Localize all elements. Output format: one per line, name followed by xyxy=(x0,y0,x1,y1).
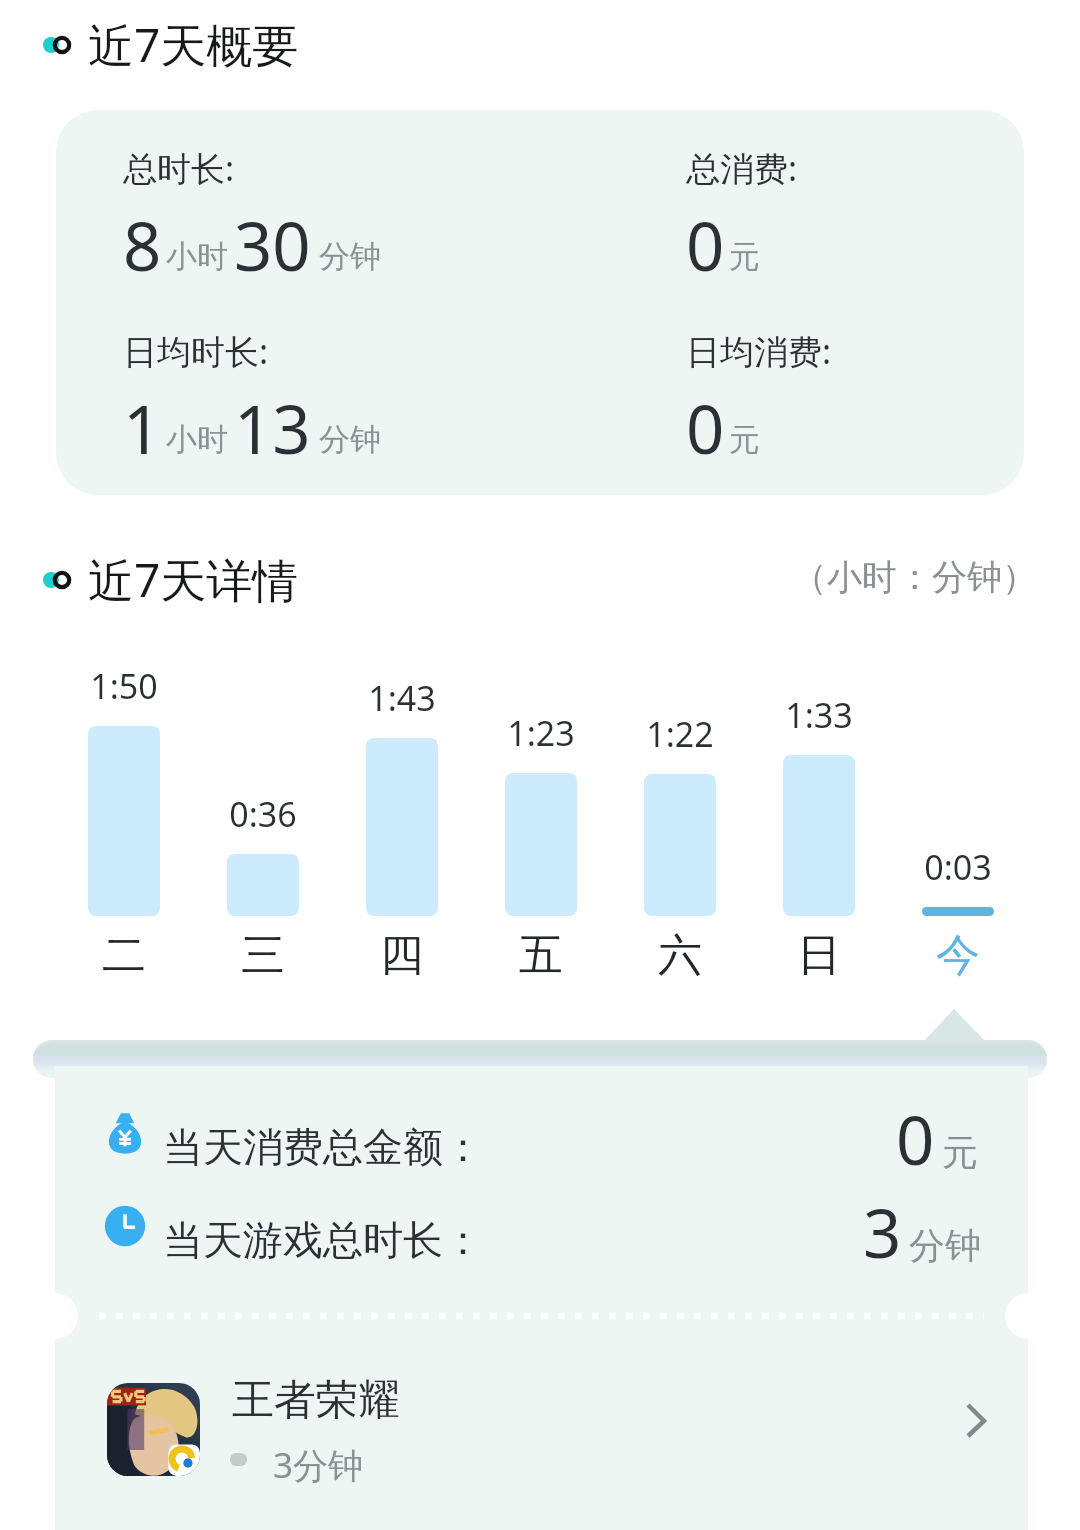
staticText: 小时 xyxy=(166,237,228,276)
other: Open app details xyxy=(955,1390,1001,1436)
button[interactable]: 总时长: xyxy=(56,110,1024,495)
staticText: 1 xyxy=(123,382,162,473)
button[interactable] xyxy=(505,773,577,916)
button[interactable] xyxy=(227,854,299,916)
staticText: 今 xyxy=(936,928,980,983)
button[interactable] xyxy=(783,755,855,916)
staticText: 当天消费总金额： xyxy=(163,1122,483,1172)
staticText: 1:22 xyxy=(646,711,714,757)
staticText: 六 xyxy=(658,928,702,983)
staticText: 3分钟 xyxy=(273,1441,364,1489)
staticText: （小时：分钟） xyxy=(792,555,1037,599)
staticText: 分钟 xyxy=(319,420,381,459)
other: Spending xyxy=(104,1112,146,1154)
staticText: 0 xyxy=(896,1093,935,1184)
button[interactable] xyxy=(366,738,438,916)
staticText: 1:50 xyxy=(90,663,158,709)
staticText: 三 xyxy=(241,928,285,983)
staticText: 8 xyxy=(123,199,162,290)
staticText: 0:36 xyxy=(229,791,297,837)
staticText: 日 xyxy=(797,928,841,983)
staticText: 0 xyxy=(686,199,725,290)
staticText: 总消费: xyxy=(686,145,798,191)
button[interactable]: 近7天概要 xyxy=(40,13,299,76)
staticText: 0 xyxy=(686,382,725,473)
staticText: 1:33 xyxy=(785,692,853,738)
staticText: 13 xyxy=(234,382,311,473)
button[interactable] xyxy=(88,726,160,916)
staticText: 日均消费: xyxy=(686,328,832,374)
staticText: 四 xyxy=(380,928,424,983)
staticText: 1:23 xyxy=(507,710,575,756)
staticText: 分钟 xyxy=(319,237,381,276)
staticText: 当天游戏总时长： xyxy=(163,1215,483,1265)
staticText: 分钟 xyxy=(909,1223,981,1268)
staticText: 1:43 xyxy=(368,675,436,721)
staticText: 元 xyxy=(942,1130,978,1175)
staticText: 元 xyxy=(729,237,760,276)
staticText: 近7天概要 xyxy=(88,13,299,76)
staticText: 3 xyxy=(863,1186,902,1277)
button[interactable] xyxy=(922,907,994,916)
staticText: 日均时长: xyxy=(123,328,269,374)
other: Play time xyxy=(104,1205,146,1247)
staticText: 五 xyxy=(519,928,563,983)
button[interactable]: 王者荣耀 xyxy=(55,1355,1028,1530)
staticText: 二 xyxy=(102,928,146,983)
staticText: 小时 xyxy=(166,420,228,459)
staticText: 0:03 xyxy=(924,844,992,890)
button[interactable]: 近7天详情 xyxy=(40,548,299,611)
staticText: 元 xyxy=(729,420,760,459)
staticText: 近7天详情 xyxy=(88,548,299,611)
staticText: 王者荣耀 xyxy=(232,1374,400,1427)
staticText: 30 xyxy=(234,199,311,290)
button[interactable] xyxy=(644,774,716,916)
staticText: 总时长: xyxy=(123,145,235,191)
